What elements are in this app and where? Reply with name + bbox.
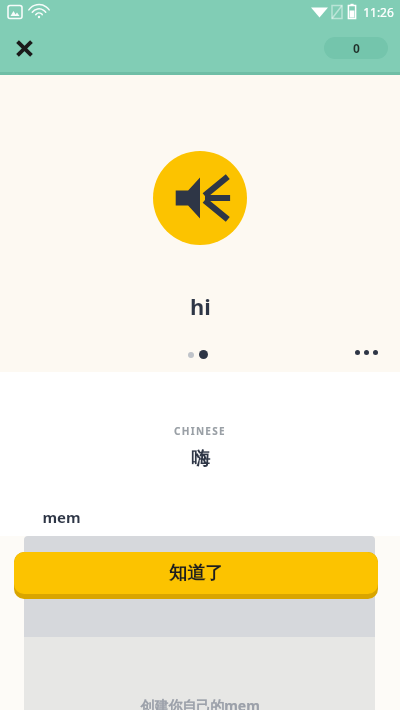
staticText: CHINESE bbox=[174, 424, 226, 438]
button[interactable]: 知道了 bbox=[14, 552, 378, 599]
staticText: 知道了 bbox=[169, 562, 223, 585]
staticText: 嗨 bbox=[191, 447, 210, 471]
button[interactable]: 0 bbox=[324, 37, 388, 59]
staticText: 创建你自己的mem bbox=[140, 696, 260, 710]
button[interactable]: More options bbox=[346, 338, 386, 366]
staticText: 11:26 bbox=[363, 4, 394, 20]
staticText: 0 bbox=[353, 40, 360, 56]
button[interactable]: Close bbox=[7, 31, 41, 65]
staticText: mem bbox=[42, 507, 81, 527]
button[interactable]: Play pronunciation bbox=[153, 151, 247, 245]
staticText: hi bbox=[190, 291, 211, 321]
